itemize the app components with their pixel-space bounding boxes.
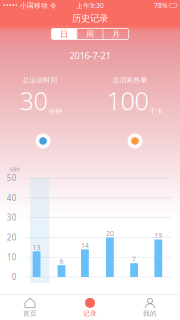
staticText: 历史记录 — [72, 13, 108, 24]
staticText: 记录 — [83, 309, 97, 318]
staticText: 令 — [50, 1, 57, 10]
staticText: 100 — [106, 84, 148, 117]
staticText: 总运动时间 — [22, 76, 57, 84]
staticText: ••••• — [3, 1, 18, 10]
staticText: 周 — [86, 29, 94, 39]
staticText: 78% — [154, 1, 168, 10]
staticText: 首页 — [23, 309, 37, 318]
staticText: 10 — [7, 252, 17, 262]
staticText: 小国移动 — [18, 1, 50, 10]
staticText: 20 — [106, 229, 114, 238]
button[interactable]: 首页 — [0, 295, 60, 320]
button[interactable]: 月 — [103, 28, 128, 39]
staticText: 7 — [132, 255, 136, 264]
button[interactable]: 我的 — [120, 295, 180, 320]
staticText: 上午9:30 — [76, 1, 104, 10]
staticText: 我的 — [143, 309, 157, 318]
staticText: 月 — [112, 29, 120, 39]
staticText: 千卡 — [149, 107, 163, 115]
button[interactable]: 周 — [77, 28, 103, 39]
staticText: 0 — [12, 272, 17, 282]
staticText: 总消耗热量 — [112, 76, 147, 84]
staticText: 30 — [7, 212, 17, 223]
staticText: 19 — [154, 231, 162, 240]
staticText: 13 — [33, 243, 41, 252]
staticText: 30 — [19, 84, 47, 117]
button[interactable]: 日 — [51, 28, 77, 39]
staticText: 20 — [7, 232, 17, 243]
staticText: 分钟 — [48, 107, 62, 115]
staticText: 2016-7-21 — [69, 49, 110, 62]
button[interactable]: 记录 — [60, 295, 120, 320]
staticText: 日 — [60, 29, 68, 39]
staticText: 50 — [7, 173, 17, 183]
staticText: 6 — [59, 257, 63, 266]
staticText: 14 — [81, 241, 89, 250]
staticText: 40 — [7, 192, 17, 203]
staticText: 分钟 — [9, 166, 19, 173]
